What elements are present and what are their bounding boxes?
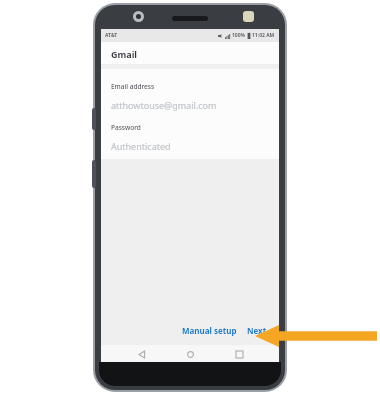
button[interactable]: Recent apps xyxy=(231,346,247,362)
staticText: 11:02 AM xyxy=(252,32,275,39)
button[interactable]: Manual setup xyxy=(177,321,242,340)
staticText: AT&T xyxy=(105,32,118,39)
staticText: Password xyxy=(111,123,141,132)
staticText: Authenticated xyxy=(111,140,171,152)
button[interactable]: Back xyxy=(134,346,150,362)
other: Pointer to Next xyxy=(255,325,377,347)
button[interactable]: Next xyxy=(242,321,279,340)
staticText: Next xyxy=(247,325,267,336)
staticText: 100% xyxy=(232,32,246,39)
button[interactable]: Home xyxy=(182,346,198,362)
staticText: Email address xyxy=(111,82,155,91)
staticText: Gmail xyxy=(111,48,138,60)
staticText: atthowtouse@gmail.com xyxy=(111,99,217,111)
staticText: Manual setup xyxy=(182,325,237,336)
